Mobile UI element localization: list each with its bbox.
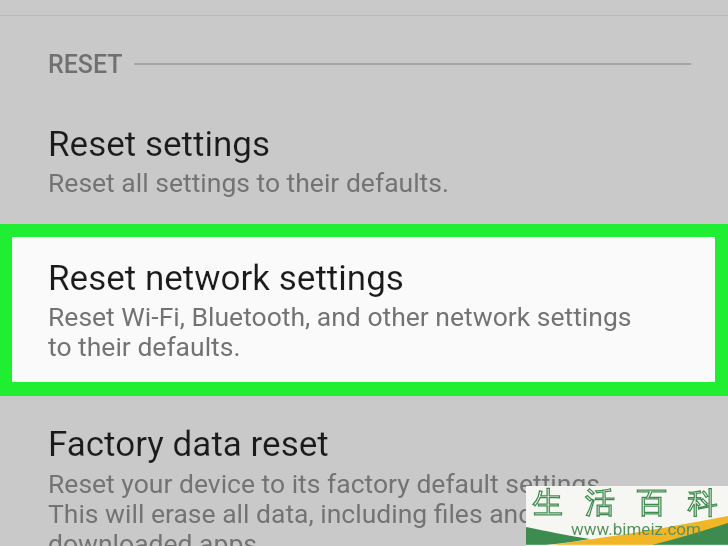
staticText: Reset settings <box>48 124 270 165</box>
staticText: Factory data reset <box>48 424 329 465</box>
staticText: 活 <box>585 484 615 522</box>
staticText: Reset network settings <box>48 258 404 299</box>
button[interactable]: Reset network settings <box>12 237 715 382</box>
staticText: Reset all settings to their defaults. <box>48 167 449 198</box>
staticText: www.bimeiz.com <box>571 519 701 539</box>
staticText: 生 <box>533 484 563 522</box>
staticText: 百 <box>637 484 667 522</box>
staticText: 科 <box>688 484 718 522</box>
staticText: Reset your device to its factory default… <box>48 468 607 546</box>
staticText: RESET <box>48 50 123 79</box>
button[interactable]: Reset settings <box>0 110 728 215</box>
staticText: Reset Wi-Fi, Bluetooth, and other networ… <box>48 301 632 362</box>
button[interactable]: Factory data reset <box>0 410 728 546</box>
